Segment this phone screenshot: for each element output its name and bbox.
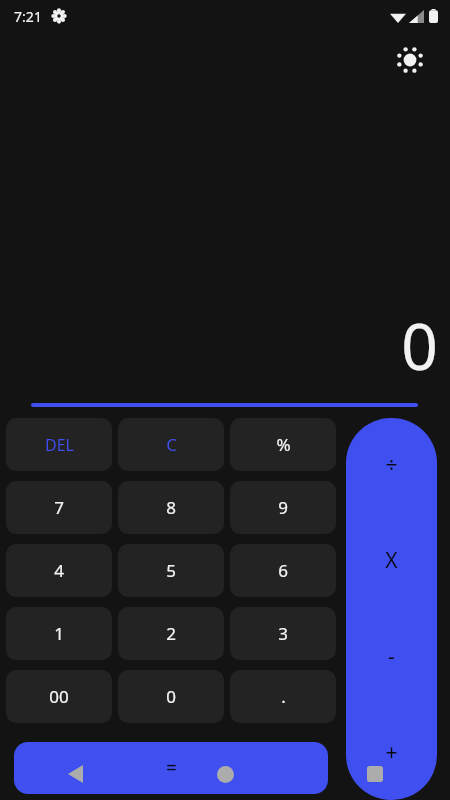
staticText: 0 (401, 302, 438, 389)
button[interactable]: 2 (118, 607, 224, 660)
button[interactable]: Back (54, 753, 96, 795)
button[interactable]: 1 (6, 607, 112, 660)
button[interactable]: + (346, 704, 437, 800)
button[interactable]: - (346, 608, 437, 704)
staticText: 7 (54, 496, 64, 519)
button[interactable]: ÷ (346, 418, 437, 513)
staticText: 3 (278, 622, 288, 645)
button[interactable]: = (14, 742, 328, 794)
button[interactable]: 8 (118, 481, 224, 534)
staticText: 5 (166, 559, 176, 582)
button[interactable]: 3 (230, 607, 336, 660)
staticText: 4 (54, 559, 64, 582)
staticText: DEL (45, 434, 74, 456)
staticText: C (166, 433, 177, 456)
button[interactable]: C (118, 418, 224, 471)
staticText: + (385, 738, 398, 767)
button[interactable]: % (230, 418, 336, 471)
button[interactable]: X (346, 513, 437, 608)
button[interactable]: Toggle theme (390, 40, 430, 80)
staticText: 00 (49, 685, 69, 708)
button[interactable]: DEL (6, 418, 112, 471)
staticText: 8 (166, 496, 176, 519)
button[interactable]: Home (204, 753, 246, 795)
staticText: ÷ (385, 451, 398, 480)
button[interactable]: 4 (6, 544, 112, 597)
staticText: . (281, 685, 286, 708)
button[interactable]: 7 (6, 481, 112, 534)
staticText: 0 (166, 685, 176, 708)
button[interactable]: . (230, 670, 336, 723)
staticText: = (166, 755, 177, 781)
staticText: - (388, 642, 395, 671)
button[interactable]: 6 (230, 544, 336, 597)
button[interactable]: 5 (118, 544, 224, 597)
staticText: 6 (278, 559, 288, 582)
button[interactable]: 9 (230, 481, 336, 534)
button[interactable]: 00 (6, 670, 112, 723)
staticText: 2 (166, 622, 176, 645)
button[interactable]: Recents (354, 753, 396, 795)
button[interactable]: 0 (118, 670, 224, 723)
staticText: X (385, 546, 398, 575)
staticText: 7:21 (14, 7, 42, 26)
staticText: 1 (54, 622, 64, 645)
staticText: 9 (278, 496, 288, 519)
staticText: % (276, 433, 291, 456)
